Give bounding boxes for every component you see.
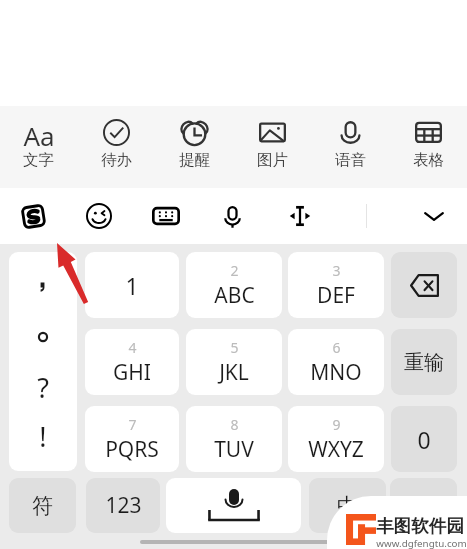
staticText: 提醒 [179,150,210,170]
button[interactable]: 中 [309,478,386,533]
button[interactable]: 2 [186,252,282,318]
button[interactable]: 8 [186,406,282,472]
staticText: Aa [23,118,55,146]
staticText: 8 [230,415,239,434]
button[interactable] [166,478,301,533]
staticText: 2 [230,261,239,280]
button[interactable]: 表格 [389,106,467,188]
button[interactable]: 0 [391,406,457,472]
staticText: GHI [113,358,151,387]
button[interactable]: 提醒 [155,106,233,188]
staticText: PQRS [105,435,159,464]
staticText: 图片 [257,150,288,170]
staticText: 5 [230,338,239,357]
staticText: TUV [214,435,254,464]
staticText: JKL [219,358,249,387]
staticText: 123 [105,491,142,520]
staticText: 重输 [404,350,444,375]
staticText: ABC [214,281,255,310]
staticText: WXYZ [308,435,364,464]
staticText: ? [37,369,49,401]
staticText: 待办 [101,150,132,170]
button[interactable]: 9 [288,406,384,472]
button[interactable]: 语音 [311,106,389,188]
button[interactable]: 5 [186,329,282,395]
button[interactable]: Keyboard layout [132,188,199,244]
button[interactable]: 1 [85,252,179,318]
staticText: 1 [125,270,139,301]
button[interactable]: 图片 [233,106,311,188]
staticText: 6 [332,338,341,357]
staticText: DEF [317,281,355,310]
staticText: 7 [128,415,137,434]
button[interactable] [390,478,457,533]
staticText: 中 [337,493,358,519]
staticText: www.dgfengtu.com [376,537,467,549]
staticText: 符 [32,493,53,519]
staticText: 9 [332,415,341,434]
staticText: 0 [417,424,431,455]
button[interactable]: Sogou input method [0,188,66,244]
button[interactable]: 待办 [77,106,155,188]
button[interactable]: 3 [288,252,384,318]
button[interactable] [391,252,457,318]
button[interactable]: Emoji [66,188,132,244]
button[interactable]: 7 [85,406,179,472]
button[interactable]: Move cursor [266,188,333,244]
button[interactable]: 重输 [391,329,457,395]
button[interactable]: 123 [86,478,160,533]
staticText: 文字 [23,150,54,170]
staticText: ! [39,418,47,450]
button[interactable] [9,252,77,471]
staticText: MNO [310,358,362,387]
button[interactable]: Voice input [199,188,266,244]
staticText: 丰图软件园 [376,515,464,537]
button[interactable]: 符 [9,478,76,533]
staticText: 3 [332,261,341,280]
button[interactable]: Aa [0,106,77,188]
button[interactable]: 4 [85,329,179,395]
staticText: 表格 [413,150,444,170]
button[interactable]: Hide keyboard [400,188,467,244]
staticText: 4 [128,338,137,357]
button[interactable]: 6 [288,329,384,395]
staticText: 语音 [335,150,366,170]
